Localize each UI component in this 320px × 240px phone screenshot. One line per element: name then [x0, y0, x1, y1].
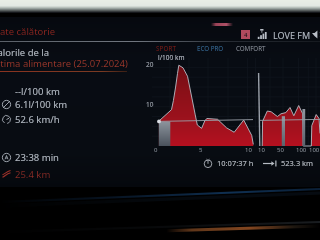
- button[interactable]: 25.4 km: [0, 168, 320, 181]
- button[interactable]: --l/100 km: [0, 85, 320, 98]
- staticText: 523.3 km: [281, 158, 314, 168]
- button[interactable]: Radio preset 4: [241, 30, 250, 39]
- button[interactable]: Signal strength: [256, 29, 267, 39]
- staticText: 23:38 min: [15, 151, 59, 164]
- staticText: 0: [154, 146, 158, 154]
- staticText: 10:07:37 h: [217, 158, 254, 168]
- staticText: 50: [277, 146, 284, 154]
- staticText: 10: [245, 146, 252, 154]
- staticText: 10: [258, 146, 265, 154]
- button[interactable]: 6.1l/100 km: [0, 98, 320, 111]
- staticText: 52.6 km/h: [15, 113, 60, 126]
- staticText: 5: [199, 146, 203, 154]
- staticText: 100: [296, 146, 307, 154]
- other: Elapsed time: [203, 158, 213, 168]
- staticText: LOVE FM: [273, 29, 311, 41]
- staticText: Valorile de la: [0, 46, 50, 59]
- other: Range: [263, 159, 277, 168]
- staticText: 25.4 km: [15, 168, 51, 181]
- button[interactable]: Volume: [312, 30, 320, 39]
- staticText: 100: [309, 146, 320, 154]
- staticText: 4: [244, 31, 248, 39]
- button[interactable]: SPORT: [156, 44, 177, 53]
- staticText: 10: [146, 100, 154, 109]
- button[interactable]: COMFORT: [236, 44, 266, 53]
- button[interactable]: 23:38 min: [0, 151, 320, 164]
- button[interactable]: ECO PRO: [197, 44, 224, 53]
- staticText: --l/100 km: [15, 85, 60, 98]
- staticText: Date călătorie: [0, 25, 56, 38]
- staticText: 20: [146, 60, 154, 69]
- staticText: 6.1l/100 km: [15, 98, 68, 111]
- staticText: ultima alimentare (25.07.2024): [0, 57, 128, 70]
- button[interactable]: 52.6 km/h: [0, 113, 320, 126]
- staticText: l/100 km: [158, 53, 185, 62]
